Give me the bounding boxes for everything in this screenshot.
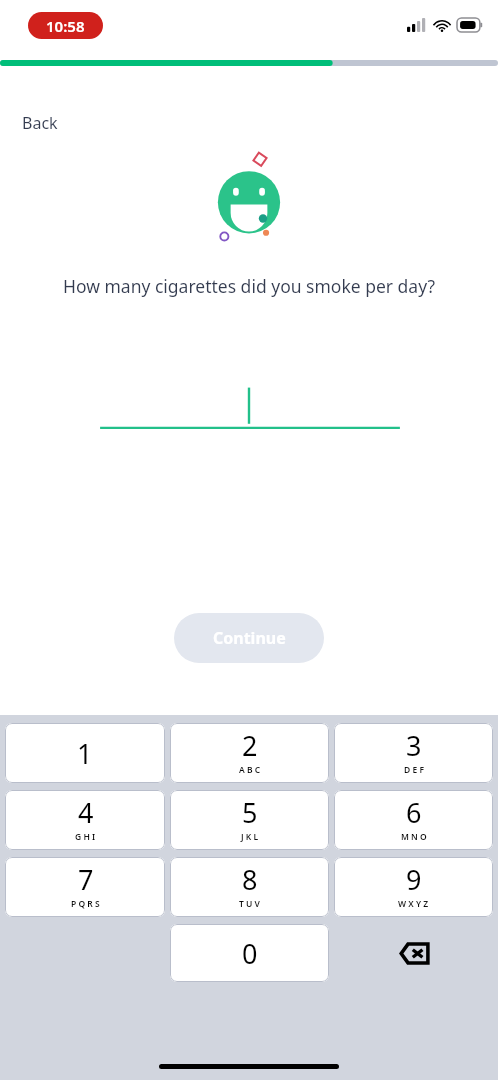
- staticText: M N O: [401, 831, 427, 843]
- staticText: 4: [78, 794, 94, 831]
- staticText: J K L: [241, 831, 259, 843]
- staticText: G H I: [75, 831, 96, 843]
- button[interactable]: 0: [170, 924, 329, 982]
- button[interactable]: 7: [5, 857, 165, 917]
- button[interactable]: [0, 378, 498, 438]
- staticText: 5: [242, 794, 258, 831]
- button[interactable]: 5: [170, 790, 329, 850]
- staticText: 0: [242, 935, 258, 972]
- staticText: 1: [77, 735, 93, 772]
- staticText: D E F: [404, 764, 424, 776]
- button[interactable]: 9: [334, 857, 493, 917]
- button[interactable]: 4: [5, 790, 165, 850]
- button[interactable]: 3: [334, 723, 493, 783]
- staticText: How many cigarettes did you smoke per da…: [24, 274, 474, 298]
- staticText: W X Y Z: [398, 898, 429, 910]
- button[interactable]: Continue: [174, 613, 324, 663]
- staticText: 9: [406, 861, 422, 898]
- button[interactable]: 8: [170, 857, 329, 917]
- button[interactable]: 6: [334, 790, 493, 850]
- staticText: T U V: [239, 898, 260, 910]
- button[interactable]: 1: [5, 723, 165, 783]
- button[interactable]: Backspace: [334, 924, 493, 982]
- staticText: 3: [406, 727, 422, 764]
- button[interactable]: Back: [14, 108, 66, 138]
- staticText: 6: [406, 794, 422, 831]
- staticText: 2: [242, 727, 258, 764]
- staticText: 7: [78, 861, 94, 898]
- staticText: P Q R S: [71, 898, 100, 910]
- staticText: Back: [22, 112, 58, 134]
- staticText: 10:58: [46, 16, 85, 36]
- staticText: A B C: [239, 764, 261, 776]
- button[interactable]: 2: [170, 723, 329, 783]
- staticText: 8: [242, 861, 258, 898]
- staticText: Continue: [213, 627, 286, 649]
